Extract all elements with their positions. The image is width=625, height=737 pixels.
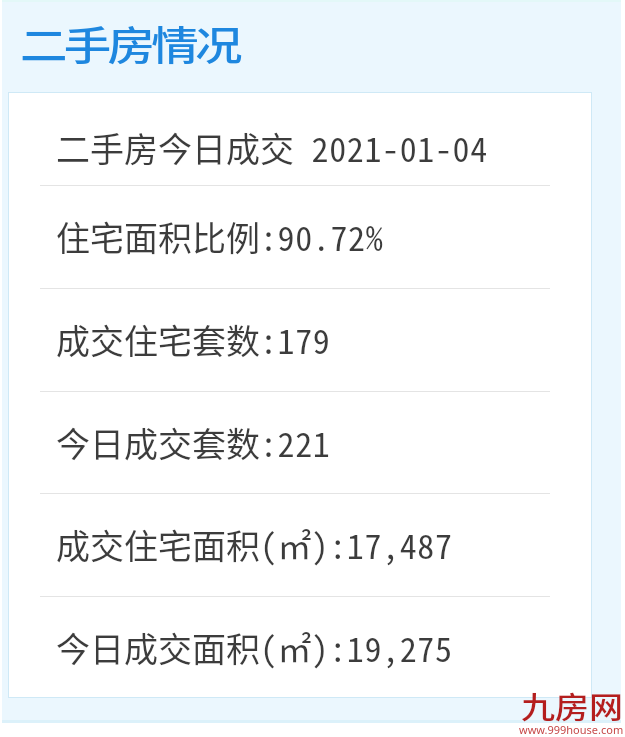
staticText: 今日成交面积(㎡):19,275	[56, 623, 453, 672]
button[interactable]: 成交住宅套数:179	[9, 288, 591, 391]
button[interactable]: 九房网 www.999house.com	[515, 688, 625, 737]
staticText: 今日成交套数:221	[56, 418, 331, 467]
staticText: 成交住宅套数:179	[56, 315, 331, 364]
button[interactable]: 二手房今日成交 2021-01-04	[9, 93, 591, 185]
staticText: www.999house.com	[519, 722, 624, 737]
staticText: 住宅面积比例:90.72%	[56, 212, 384, 261]
button[interactable]: 成交住宅面积(㎡):17,487	[9, 493, 591, 596]
staticText: 二手房今日成交 2021-01-04	[56, 123, 488, 172]
staticText: 成交住宅面积(㎡):17,487	[56, 520, 453, 569]
staticText: 二手房情况	[20, 14, 239, 71]
button[interactable]: 今日成交套数:221	[9, 391, 591, 493]
button[interactable]: 今日成交面积(㎡):19,275	[9, 596, 591, 697]
staticText: 九房网	[521, 684, 623, 727]
button[interactable]: 住宅面积比例:90.72%	[9, 185, 591, 288]
